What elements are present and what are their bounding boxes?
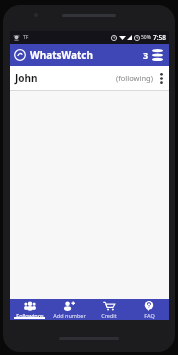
button[interactable]: FAQ (129, 299, 169, 320)
button[interactable]: John (10, 66, 169, 90)
staticText: 3 (143, 49, 149, 61)
staticText: Add number (53, 312, 86, 319)
button[interactable]: Credit (89, 299, 129, 320)
button[interactable]: More options (156, 67, 167, 89)
button[interactable]: Followings (10, 299, 49, 320)
staticText: FAQ (144, 312, 155, 319)
staticText: TF (23, 34, 29, 41)
staticText: 50% (141, 34, 151, 41)
staticText: 7:58 (153, 33, 166, 42)
staticText: Followings (16, 312, 44, 319)
button[interactable]: Add number (49, 299, 89, 320)
staticText: WhatsWatch (30, 48, 93, 62)
staticText: Credit (101, 312, 117, 319)
staticText: (following) (116, 73, 153, 83)
staticText: John (15, 71, 38, 85)
button[interactable]: Credits: 3 (141, 47, 165, 63)
